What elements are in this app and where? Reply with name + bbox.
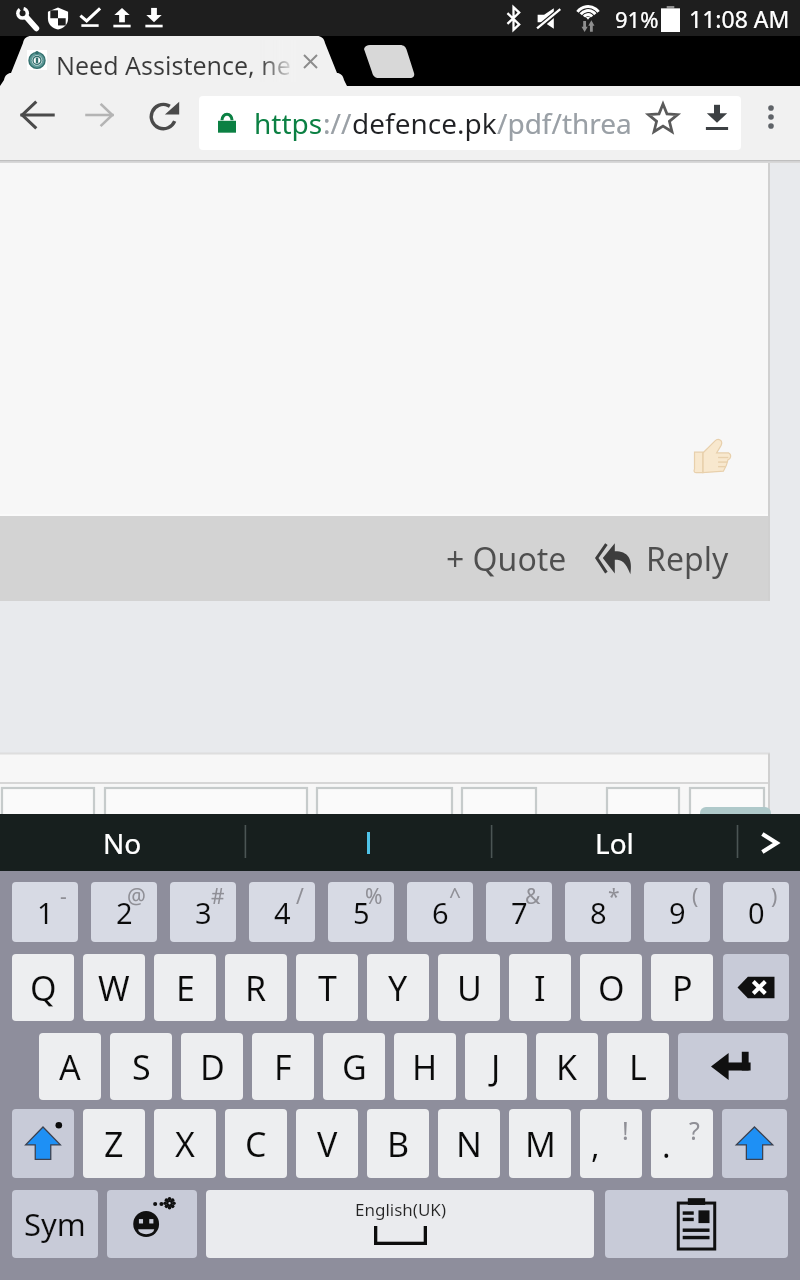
staticText: Q — [30, 965, 57, 1011]
button[interactable]: More suggestions — [738, 814, 800, 871]
button[interactable]: F — [252, 1033, 314, 1100]
staticText: E — [176, 965, 195, 1011]
button[interactable]: Download — [692, 93, 742, 143]
button[interactable]: 1 — [12, 882, 78, 942]
staticText: 4 — [274, 893, 291, 932]
button[interactable]: Shift — [722, 1109, 787, 1178]
button[interactable]: Emoji — [107, 1190, 197, 1258]
staticText: 8 — [590, 893, 607, 932]
button[interactable]: Reload — [136, 86, 194, 144]
staticText: 5 — [353, 893, 370, 932]
button[interactable]: T — [296, 954, 358, 1021]
button[interactable]: Shift — [12, 1109, 74, 1178]
staticText: & — [525, 882, 541, 911]
staticText: M — [525, 1121, 556, 1167]
staticText: No — [103, 824, 142, 862]
button[interactable]: 0 — [723, 882, 789, 942]
staticText: 7 — [511, 893, 528, 932]
button[interactable] — [246, 814, 491, 871]
button[interactable]: Clipboard — [605, 1190, 788, 1258]
staticText: J — [491, 1044, 501, 1090]
button[interactable]: Z — [83, 1109, 145, 1178]
staticText: H — [412, 1044, 438, 1090]
button[interactable]: X — [154, 1109, 216, 1178]
button[interactable]: Enter — [678, 1033, 788, 1100]
staticText: V — [317, 1121, 338, 1167]
staticText: defence.pk — [352, 104, 497, 142]
staticText: N — [456, 1121, 482, 1167]
staticText: :// — [323, 104, 352, 142]
staticText: I — [534, 965, 546, 1011]
button[interactable]: . — [651, 1109, 713, 1178]
button[interactable]: More options — [748, 94, 794, 140]
button[interactable]: Q — [12, 954, 74, 1021]
staticText: K — [556, 1044, 578, 1090]
button[interactable]: Address bar — [199, 96, 741, 150]
staticText: F — [274, 1044, 292, 1090]
button[interactable]: G — [323, 1033, 385, 1100]
button[interactable]: 9 — [644, 882, 710, 942]
staticText: ) — [771, 882, 778, 911]
button[interactable]: N — [438, 1109, 500, 1178]
button[interactable]: Bookmark — [638, 93, 688, 143]
staticText: U — [457, 965, 482, 1011]
staticText: , — [591, 1124, 600, 1168]
button[interactable]: 5 — [328, 882, 394, 942]
button[interactable]: P — [651, 954, 713, 1021]
button[interactable]: C — [225, 1109, 287, 1178]
staticText: 3 — [195, 893, 212, 932]
button[interactable]: Forward — [71, 86, 129, 144]
button[interactable]: V — [296, 1109, 358, 1178]
staticText: A — [59, 1044, 81, 1090]
button[interactable]: 7 — [486, 882, 552, 942]
button[interactable]: + Quote — [440, 516, 572, 601]
staticText: English(UK) — [355, 1198, 446, 1221]
button[interactable]: B — [367, 1109, 429, 1178]
button[interactable]: Sym — [12, 1190, 98, 1258]
button[interactable]: Y — [367, 954, 429, 1021]
button[interactable]: R — [225, 954, 287, 1021]
button[interactable]: 2 — [91, 882, 157, 942]
button[interactable]: 8 — [565, 882, 631, 942]
button[interactable]: Reply — [596, 516, 738, 601]
staticText: Lol — [595, 824, 634, 862]
button[interactable]: L — [607, 1033, 669, 1100]
staticText: https — [254, 104, 323, 142]
button[interactable]: 3 — [170, 882, 236, 942]
staticText: G — [342, 1044, 367, 1090]
button[interactable]: W — [83, 954, 145, 1021]
staticText: ? — [689, 1113, 700, 1147]
button[interactable]: K — [536, 1033, 598, 1100]
button[interactable]: O — [580, 954, 642, 1021]
staticText: P — [672, 965, 693, 1011]
button[interactable]: Backspace — [723, 954, 789, 1021]
staticText: * — [608, 882, 620, 911]
button[interactable]: , — [580, 1109, 642, 1178]
button[interactable]: U — [438, 954, 500, 1021]
staticText: + Quote — [446, 537, 567, 581]
button[interactable]: Back — [8, 86, 66, 144]
button[interactable]: No — [0, 814, 245, 871]
button[interactable]: 4 — [249, 882, 315, 942]
button[interactable]: M — [509, 1109, 571, 1178]
button[interactable]: Close tab — [292, 43, 328, 79]
button[interactable]: E — [154, 954, 216, 1021]
button[interactable]: J — [465, 1033, 527, 1100]
button[interactable]: 6 — [407, 882, 473, 942]
staticText: L — [629, 1044, 647, 1090]
staticText: # — [211, 882, 225, 911]
staticText: / — [296, 882, 304, 911]
staticText: X — [175, 1121, 195, 1167]
staticText: % — [365, 882, 383, 911]
staticText: W — [98, 965, 130, 1011]
button[interactable]: D — [181, 1033, 243, 1100]
staticText: ( — [692, 882, 699, 911]
staticText: D — [200, 1044, 225, 1090]
button[interactable]: Space — [206, 1190, 594, 1258]
button[interactable]: I — [509, 954, 571, 1021]
button[interactable]: S — [110, 1033, 172, 1100]
staticText: Y — [388, 965, 408, 1011]
button[interactable]: H — [394, 1033, 456, 1100]
button[interactable]: A — [39, 1033, 101, 1100]
button[interactable]: Lol — [492, 814, 737, 871]
